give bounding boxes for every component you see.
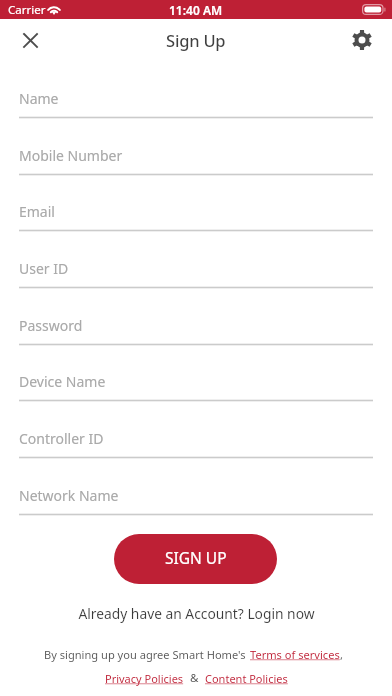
- staticText: 11:40 AM: [169, 2, 223, 18]
- staticText: Mobile Number: [19, 146, 123, 165]
- button[interactable]: Network Name: [19, 477, 373, 517]
- staticText: User ID: [19, 259, 69, 278]
- button[interactable]: SIGN UP: [114, 534, 277, 584]
- staticText: Device Name: [19, 372, 106, 391]
- button[interactable]: Privacy Policies: [105, 671, 184, 686]
- button[interactable]: Password: [19, 307, 373, 347]
- staticText: Carrier: [8, 2, 46, 18]
- button[interactable]: Controller ID: [19, 420, 373, 460]
- button[interactable]: Device Name: [19, 363, 373, 403]
- staticText: Controller ID: [19, 429, 104, 448]
- staticText: ,: [340, 647, 343, 662]
- staticText: Password: [19, 316, 83, 335]
- staticText: Network Name: [19, 486, 119, 505]
- staticText: Name: [19, 89, 59, 108]
- staticText: By signing up you agree Smart Home's: [44, 647, 246, 662]
- button[interactable]: Close: [17, 27, 43, 53]
- button[interactable]: Content Policies: [205, 671, 288, 686]
- button[interactable]: Terms of services: [250, 647, 340, 662]
- staticText: Sign Up: [166, 29, 226, 51]
- staticText: Email: [19, 202, 55, 221]
- button[interactable]: Name: [19, 80, 373, 120]
- button[interactable]: Settings: [349, 27, 375, 53]
- staticText: &: [184, 670, 205, 686]
- button[interactable]: Already have an Account? Login now: [78, 604, 315, 623]
- button[interactable]: Email: [19, 193, 373, 233]
- button[interactable]: User ID: [19, 250, 373, 290]
- button[interactable]: Mobile Number: [19, 137, 373, 177]
- staticText: SIGN UP: [165, 547, 227, 568]
